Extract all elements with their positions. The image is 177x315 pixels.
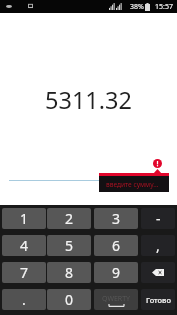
button[interactable]: 4 — [2, 235, 46, 256]
button[interactable]: , — [141, 235, 175, 256]
button[interactable]: 6 — [94, 235, 138, 256]
staticText: введите сумму... — [106, 180, 159, 189]
button[interactable]: 7 — [2, 262, 46, 283]
button[interactable]: Switch to QWERTY keyboard — [94, 289, 138, 310]
button[interactable]: - — [141, 208, 175, 229]
button[interactable]: 3 — [94, 208, 138, 229]
staticText: , — [156, 236, 160, 255]
staticText: 5311.32 — [45, 84, 132, 116]
staticText: 15:57 — [155, 2, 173, 12]
button[interactable]: . — [2, 289, 46, 310]
staticText: QWERTY — [102, 294, 131, 304]
button[interactable]: 1 — [2, 208, 46, 229]
button[interactable]: 0 — [47, 289, 91, 310]
staticText: 4 — [20, 236, 29, 255]
staticText: - — [156, 209, 161, 228]
staticText: 1 — [20, 209, 29, 228]
staticText: 9 — [112, 263, 121, 282]
staticText: 2 — [65, 209, 74, 228]
staticText: 5 — [65, 236, 74, 255]
button[interactable]: 8 — [47, 262, 91, 283]
button[interactable]: Готово — [141, 289, 175, 310]
staticText: 3 — [112, 209, 121, 228]
button[interactable]: 5 — [47, 235, 91, 256]
button[interactable]: 9 — [94, 262, 138, 283]
button[interactable]: 2 — [47, 208, 91, 229]
button[interactable]: Backspace — [141, 262, 175, 283]
staticText: 7 — [20, 263, 29, 282]
staticText: 38% — [130, 2, 144, 12]
staticText: Готово — [146, 295, 171, 305]
staticText: 6 — [112, 236, 121, 255]
staticText: 0 — [65, 290, 74, 309]
staticText: . — [22, 290, 26, 309]
staticText: 8 — [65, 263, 74, 282]
